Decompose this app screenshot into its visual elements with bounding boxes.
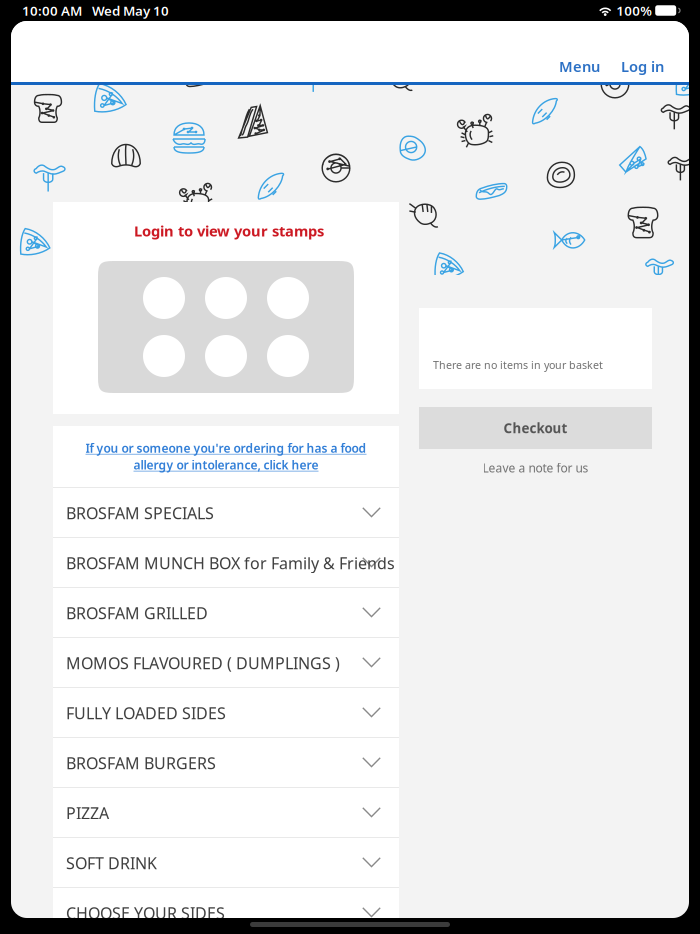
staticText: BROSFAM GRILLED bbox=[66, 602, 208, 624]
button[interactable]: BROSFAM BURGERS bbox=[53, 738, 399, 788]
button[interactable]: Checkout bbox=[419, 407, 652, 449]
button[interactable]: BROSFAM MUNCH BOX for Family & Friends bbox=[53, 538, 399, 588]
staticText: SOFT DRINK bbox=[66, 852, 157, 874]
staticText: There are no items in your basket bbox=[433, 358, 603, 372]
button[interactable]: FULLY LOADED SIDES bbox=[53, 688, 399, 738]
button[interactable]: Leave a note for us bbox=[419, 455, 652, 481]
staticText: Checkout bbox=[503, 419, 567, 437]
button[interactable]: CHOOSE YOUR SIDES bbox=[53, 888, 399, 934]
staticText: 10:00 AM bbox=[22, 2, 82, 19]
button[interactable]: If you or someone you're ordering for ha… bbox=[53, 426, 399, 487]
staticText: Login to view your stamps bbox=[134, 221, 324, 240]
button[interactable]: BROSFAM GRILLED bbox=[53, 588, 399, 638]
button[interactable]: Log in bbox=[614, 52, 671, 80]
staticText: FULLY LOADED SIDES bbox=[66, 702, 226, 724]
button[interactable]: SOFT DRINK bbox=[53, 838, 399, 888]
button[interactable]: MOMOS FLAVOURED ( DUMPLINGS ) bbox=[53, 638, 399, 688]
button[interactable]: PIZZA bbox=[53, 788, 399, 838]
staticText: BROSFAM BURGERS bbox=[66, 752, 216, 774]
staticText: PIZZA bbox=[66, 802, 109, 824]
staticText: Leave a note for us bbox=[482, 460, 588, 476]
button[interactable]: Menu bbox=[552, 52, 607, 80]
staticText: If you or someone you're ordering for ha… bbox=[85, 440, 366, 456]
staticText: Menu bbox=[559, 56, 600, 76]
staticText: MOMOS FLAVOURED ( DUMPLINGS ) bbox=[66, 652, 340, 674]
staticText: 100% bbox=[616, 2, 652, 19]
staticText: Wed May 10 bbox=[92, 2, 169, 19]
staticText: Log in bbox=[621, 56, 664, 76]
staticText: allergy or intolerance, click here bbox=[133, 457, 318, 473]
staticText: BROSFAM SPECIALS bbox=[66, 502, 214, 524]
button[interactable]: BROSFAM SPECIALS bbox=[53, 488, 399, 538]
staticText: BROSFAM MUNCH BOX for Family & Friends bbox=[66, 552, 395, 574]
staticText: CHOOSE YOUR SIDES bbox=[66, 902, 225, 924]
